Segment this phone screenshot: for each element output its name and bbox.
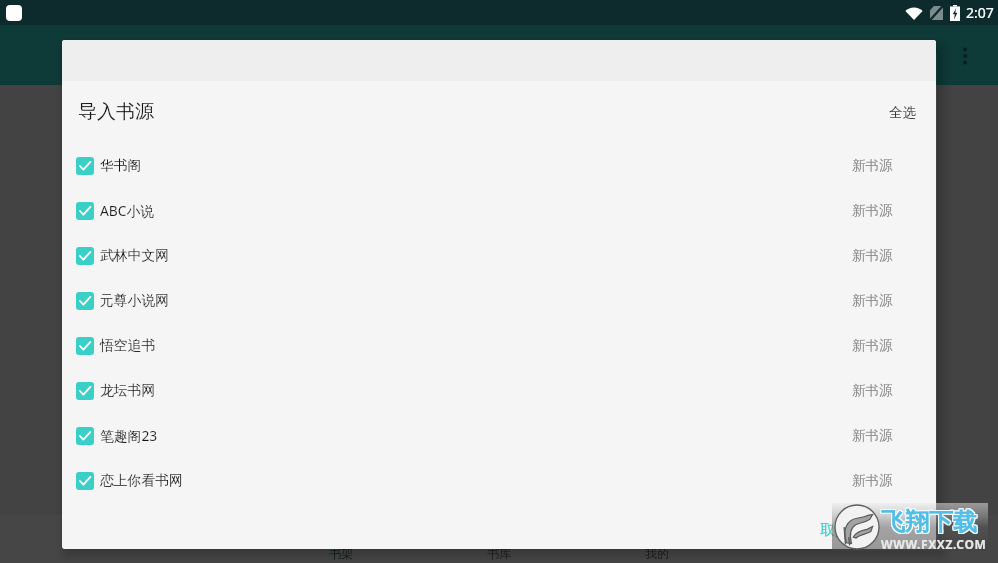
staticText: 新书源 xyxy=(852,472,893,489)
button[interactable]: 华书阁 xyxy=(62,143,936,188)
button[interactable]: 书库 xyxy=(420,515,578,563)
staticText: 华书阁 xyxy=(100,157,142,174)
staticText: 书库 xyxy=(487,546,511,561)
staticText: 悟空追书 xyxy=(100,337,156,354)
button[interactable]: 书架 xyxy=(262,515,420,563)
staticText: 新书源 xyxy=(852,382,893,399)
staticText: 飞翔下载 xyxy=(881,508,977,538)
staticText: 全选 xyxy=(889,104,916,121)
staticText: 我的 xyxy=(645,546,669,561)
button[interactable]: 元尊小说网 xyxy=(62,278,936,323)
staticText: 龙坛书网 xyxy=(100,382,156,399)
button[interactable]: 恋上你看书网 xyxy=(62,458,936,503)
staticText: 2:07 xyxy=(966,3,994,22)
button[interactable]: 全选 xyxy=(883,98,922,127)
button[interactable]: 我的 xyxy=(578,515,736,563)
staticText: 飞翔下载 xyxy=(880,507,976,537)
button[interactable]: 取消 xyxy=(812,514,858,547)
staticText: 元尊小说网 xyxy=(100,292,169,309)
button[interactable]: More options xyxy=(950,41,980,71)
staticText: 书架 xyxy=(329,546,353,561)
staticText: 新书源 xyxy=(852,202,893,219)
button[interactable]: 龙坛书网 xyxy=(62,368,936,413)
staticText: 飞翔下载 xyxy=(880,506,976,536)
staticText: 新书源 xyxy=(852,157,893,174)
staticText: 新书源 xyxy=(852,247,893,264)
button[interactable]: 悟空追书 xyxy=(62,323,936,368)
staticText: 导入书源 xyxy=(78,100,154,124)
staticText: 飞翔下载 xyxy=(880,508,976,538)
button[interactable]: 笔趣阁23 xyxy=(62,413,936,458)
staticText: 笔趣阁23 xyxy=(100,426,158,445)
button[interactable]: 武林中文网 xyxy=(62,233,936,278)
staticText: 飞翔下载 xyxy=(881,506,977,536)
staticText: 恋上你看书网 xyxy=(100,472,183,489)
staticText: 飞翔下载 xyxy=(882,506,978,536)
staticText: 飞翔下载 xyxy=(882,507,978,537)
staticText: ABC小说 xyxy=(100,201,155,220)
staticText: 飞翔下载 xyxy=(882,508,978,538)
staticText: 飞翔下载 xyxy=(881,507,977,537)
staticText: WWW.FXXZ.COM xyxy=(881,536,987,552)
staticText: 取消 xyxy=(820,521,850,540)
staticText: 新书源 xyxy=(852,292,893,309)
staticText: 新书源 xyxy=(852,427,893,444)
staticText: 武林中文网 xyxy=(100,247,169,264)
staticText: 新书源 xyxy=(852,337,893,354)
button[interactable]: ABC小说 xyxy=(62,188,936,233)
